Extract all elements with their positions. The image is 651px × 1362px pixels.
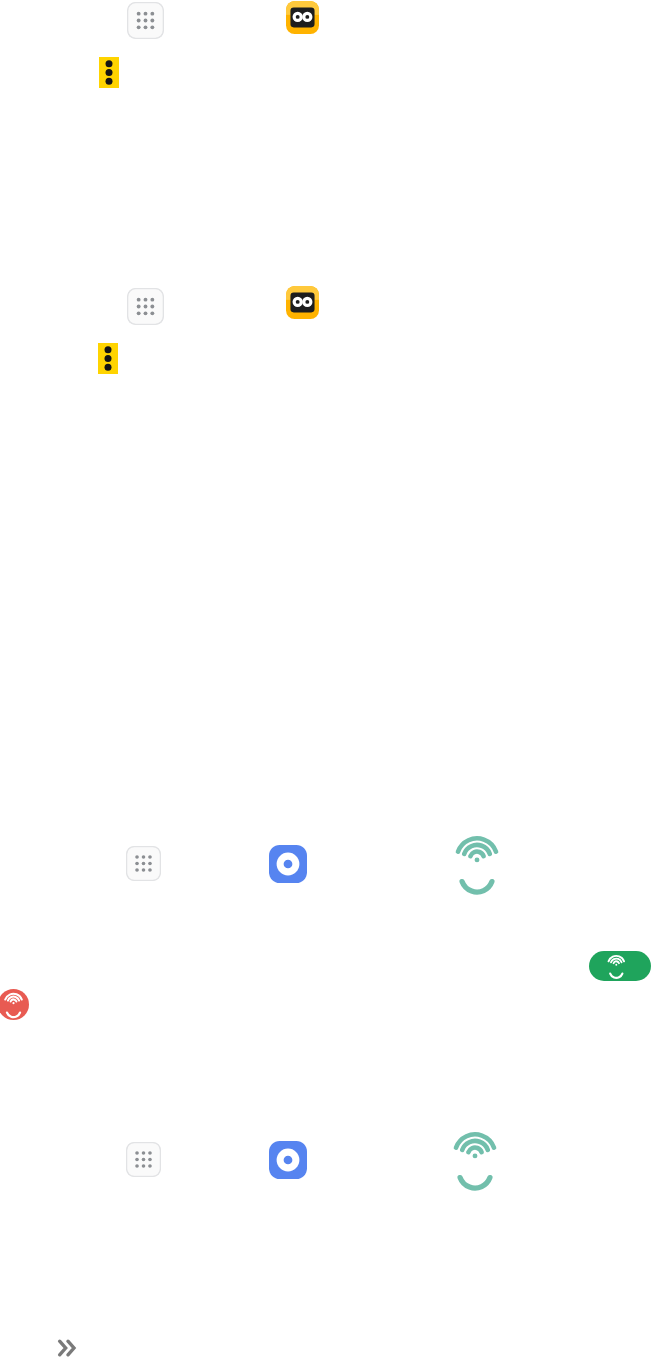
button[interactable]: Settings	[269, 845, 307, 883]
button[interactable]: More options	[98, 343, 118, 374]
button[interactable]: Wi-Fi calling	[455, 841, 499, 885]
button[interactable]: Expand	[56, 1338, 82, 1358]
button[interactable]: Voicemail	[286, 286, 319, 319]
button[interactable]: Apps	[127, 2, 164, 39]
button[interactable]: Wi-Fi calling off	[0, 989, 29, 1020]
button[interactable]: Apps	[126, 1142, 161, 1177]
button[interactable]: Wi-Fi calling	[453, 1137, 497, 1181]
button[interactable]: Wi-Fi calling on	[589, 951, 651, 981]
button[interactable]: Apps	[127, 288, 164, 325]
button[interactable]: Settings	[269, 1141, 307, 1179]
button[interactable]: More options	[99, 57, 119, 88]
button[interactable]: Voicemail	[286, 1, 319, 34]
button[interactable]: Apps	[126, 846, 161, 881]
